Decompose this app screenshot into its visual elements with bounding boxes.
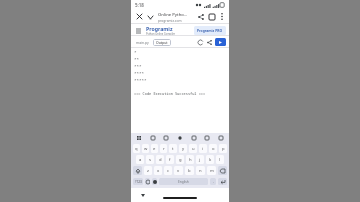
- staticText: c: [167, 168, 170, 174]
- button[interactable]: s: [146, 155, 154, 164]
- staticText: Online Pytho…: [158, 12, 188, 18]
- staticText: *****: [134, 78, 147, 84]
- button[interactable]: h: [186, 155, 194, 164]
- staticText: i: [202, 146, 204, 152]
- button[interactable]: Online Pytho…: [158, 12, 193, 22]
- button[interactable]: Keyboard tool 6: [217, 134, 225, 142]
- button[interactable]: e: [151, 144, 158, 153]
- button[interactable]: Expand: [145, 12, 155, 22]
- button[interactable]: Output: [153, 39, 171, 46]
- staticText: English: [178, 180, 189, 184]
- staticText: h: [189, 157, 192, 163]
- button[interactable]: x: [154, 166, 162, 175]
- staticText: ***: [134, 64, 142, 70]
- button[interactable]: r: [160, 144, 167, 153]
- staticText: z: [147, 168, 149, 174]
- button[interactable]: Share code: [205, 38, 214, 47]
- staticText: j: [199, 157, 201, 163]
- staticText: r: [163, 146, 165, 152]
- button[interactable]: q: [133, 144, 140, 153]
- staticText: t: [172, 146, 174, 152]
- button[interactable]: i: [199, 144, 207, 153]
- button[interactable]: g: [176, 155, 184, 164]
- button[interactable]: Programiz: [146, 25, 176, 36]
- button[interactable]: Period: [210, 178, 216, 185]
- button[interactable]: Refresh: [196, 38, 205, 47]
- button[interactable]: main.py: [134, 39, 151, 46]
- button[interactable]: Shift: [133, 166, 142, 175]
- button[interactable]: Numbers and symbols: [133, 178, 143, 185]
- button[interactable]: Change language: [152, 178, 157, 185]
- button[interactable]: l: [216, 155, 224, 164]
- button[interactable]: Share: [195, 11, 206, 22]
- staticText: d: [159, 157, 162, 163]
- button[interactable]: Keyboard tool 1: [149, 134, 157, 142]
- staticText: Programiz: [146, 25, 173, 32]
- button[interactable]: Keyboard tool 4: [190, 134, 198, 142]
- staticText: b: [188, 168, 191, 174]
- button[interactable]: Enter: [218, 178, 227, 185]
- staticText: === Code Execution Successful ===: [134, 91, 206, 96]
- button[interactable]: y: [179, 144, 187, 153]
- staticText: s: [149, 157, 152, 163]
- staticText: y: [182, 146, 185, 152]
- staticText: Programiz PRO: [197, 28, 223, 33]
- button[interactable]: More options: [217, 12, 226, 21]
- staticText: Python Online Compiler: [146, 32, 176, 36]
- staticText: programiz.com: [158, 18, 182, 22]
- staticText: q: [135, 146, 138, 152]
- button[interactable]: k: [206, 155, 214, 164]
- staticText: u: [192, 146, 195, 152]
- staticText: **: [134, 57, 140, 63]
- staticText: l: [219, 157, 221, 163]
- staticText: a: [139, 157, 142, 163]
- staticText: w: [144, 146, 148, 152]
- button[interactable]: Hide keyboard: [139, 191, 147, 199]
- staticText: e: [153, 146, 156, 152]
- button[interactable]: w: [142, 144, 149, 153]
- staticText: o: [212, 146, 215, 152]
- staticText: 5:18: [135, 2, 144, 8]
- staticText: k: [209, 157, 212, 163]
- button[interactable]: u: [189, 144, 197, 153]
- button[interactable]: c: [164, 166, 172, 175]
- button[interactable]: Space: [159, 178, 208, 185]
- staticText: v: [177, 168, 180, 174]
- staticText: x: [157, 168, 160, 174]
- staticText: ****: [134, 71, 145, 77]
- button[interactable]: a: [136, 155, 144, 164]
- button[interactable]: Emoji: [145, 178, 150, 185]
- staticText: *: [134, 50, 137, 56]
- button[interactable]: Keyboard tool 3: [176, 134, 184, 142]
- staticText: p: [222, 146, 225, 152]
- button[interactable]: d: [156, 155, 164, 164]
- button[interactable]: t: [169, 144, 177, 153]
- button[interactable]: f: [166, 155, 174, 164]
- button[interactable]: Programiz PRO: [194, 26, 226, 35]
- button[interactable]: o: [209, 144, 217, 153]
- staticText: Output: [156, 40, 168, 45]
- button[interactable]: Tabs: [206, 11, 217, 22]
- button[interactable]: m: [207, 166, 216, 175]
- button[interactable]: Keyboard tool 0: [135, 134, 143, 142]
- button[interactable]: z: [144, 166, 152, 175]
- staticText: main.py: [136, 40, 149, 45]
- button[interactable]: n: [196, 166, 205, 175]
- button[interactable]: Close: [134, 11, 145, 22]
- button[interactable]: Run: [215, 38, 226, 46]
- staticText: .: [213, 179, 214, 184]
- button[interactable]: Menu: [134, 26, 143, 35]
- button[interactable]: b: [185, 166, 194, 175]
- staticText: n: [199, 168, 202, 174]
- button[interactable]: Keyboard tool 5: [203, 134, 211, 142]
- button[interactable]: p: [219, 144, 227, 153]
- staticText: m: [210, 168, 214, 174]
- staticText: f: [169, 157, 171, 163]
- button[interactable]: Backspace: [218, 166, 227, 175]
- staticText: ?123: [135, 180, 142, 184]
- staticText: g: [179, 157, 182, 163]
- button[interactable]: Keyboard tool 2: [162, 134, 170, 142]
- button[interactable]: j: [196, 155, 204, 164]
- button[interactable]: v: [174, 166, 183, 175]
